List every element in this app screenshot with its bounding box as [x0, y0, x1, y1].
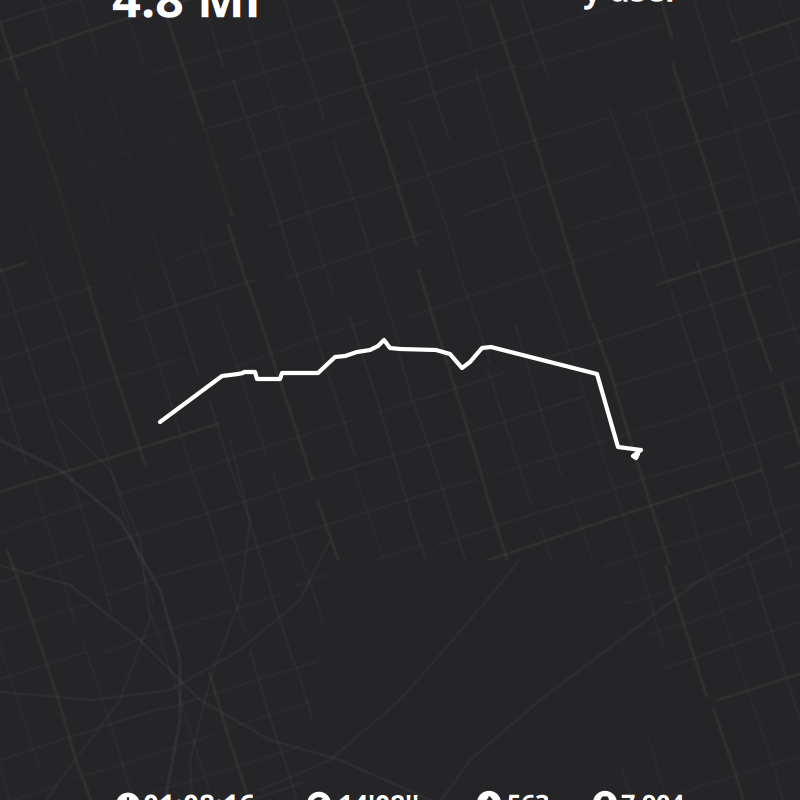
staticText: 563	[507, 786, 549, 800]
staticText: 7,904	[621, 786, 684, 800]
button[interactable]: 01:08:16	[116, 786, 255, 800]
staticText: y user	[583, 0, 679, 10]
button[interactable]: 563	[477, 786, 549, 800]
button[interactable]: y user	[583, 0, 679, 10]
staticText: 4.8 Mi	[112, 0, 260, 31]
staticText: 01:08:16	[143, 786, 255, 800]
button[interactable]: 7,904	[593, 786, 684, 800]
staticText: 14'08''	[338, 786, 419, 800]
button[interactable]: 14'08''	[307, 786, 419, 800]
